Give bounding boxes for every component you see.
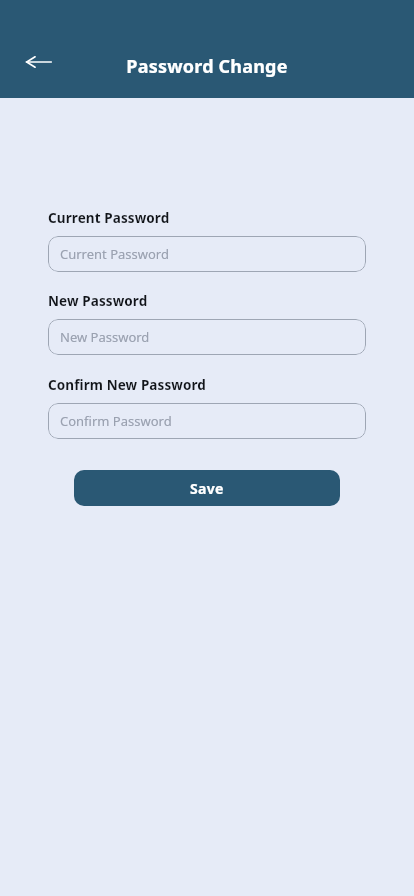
staticText: Current Password xyxy=(60,245,169,263)
button[interactable]: Confirm Password xyxy=(48,403,366,439)
staticText: Confirm New Password xyxy=(48,376,206,394)
staticText: New Password xyxy=(60,328,150,346)
button[interactable]: Save xyxy=(74,470,340,506)
button[interactable]: New Password xyxy=(48,319,366,355)
button[interactable]: Current Password xyxy=(48,236,366,272)
staticText: Confirm Password xyxy=(60,412,172,430)
button[interactable]: Back xyxy=(20,45,58,79)
staticText: Current Password xyxy=(48,209,170,227)
staticText: Password Change xyxy=(0,54,414,79)
staticText: Save xyxy=(190,479,224,498)
staticText: New Password xyxy=(48,292,148,310)
